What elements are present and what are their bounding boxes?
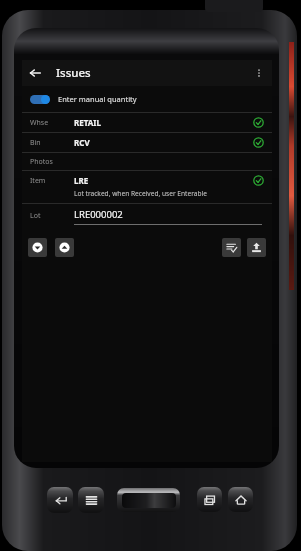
staticText: Enter manual quantity	[58, 94, 137, 104]
button[interactable]: Enter manual quantity	[22, 86, 272, 112]
staticText: Whse	[30, 118, 74, 128]
button[interactable]: Item	[22, 171, 272, 203]
button[interactable]: More options	[246, 60, 272, 86]
staticText: RCV	[74, 137, 90, 148]
staticText: RETAIL	[74, 117, 101, 128]
button[interactable]: Scan key	[117, 488, 180, 512]
staticText: Lot	[30, 211, 74, 221]
staticText: Issues	[56, 65, 91, 81]
button[interactable]: Lot	[22, 204, 272, 228]
button[interactable]: Home key	[228, 487, 253, 512]
button[interactable]: Submit	[247, 238, 266, 257]
button[interactable]: Menu key	[78, 487, 104, 513]
staticText: Lot tracked, when Received, user Enterab…	[74, 189, 207, 198]
button[interactable]: Whse	[22, 113, 272, 132]
button[interactable]: Recents key	[197, 487, 222, 512]
staticText: LRE	[74, 175, 89, 186]
button[interactable]: Decrease quantity	[28, 238, 47, 257]
staticText: Item	[30, 176, 46, 186]
button[interactable]: Increase quantity	[55, 238, 74, 257]
staticText: LRE000002	[74, 208, 123, 221]
staticText: Photos	[30, 157, 74, 167]
button[interactable]: Bin	[22, 133, 272, 152]
button[interactable]: Back	[22, 60, 48, 86]
button[interactable]: Photos	[22, 153, 272, 170]
button[interactable]: Review list	[222, 238, 241, 257]
staticText: Bin	[30, 138, 74, 148]
button[interactable]: Back key	[47, 487, 73, 513]
